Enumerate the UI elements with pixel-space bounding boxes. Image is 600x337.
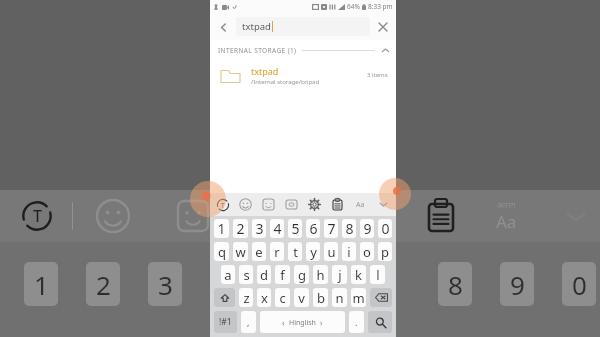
button[interactable]: 3 xyxy=(252,219,266,238)
staticText: r xyxy=(274,243,280,261)
button[interactable]: r xyxy=(270,242,284,261)
button[interactable]: Shift xyxy=(214,288,235,307)
staticText: › xyxy=(320,317,323,328)
staticText: b xyxy=(317,289,325,307)
staticText: a xyxy=(224,266,232,284)
button[interactable]: 4 xyxy=(270,219,284,238)
staticText: w xyxy=(235,243,246,261)
button[interactable]: b xyxy=(313,288,328,307)
button[interactable]: f xyxy=(275,265,290,284)
staticText: . xyxy=(355,316,358,328)
button[interactable]: i xyxy=(342,242,356,261)
button[interactable]: p xyxy=(378,242,392,261)
button[interactable]: a xyxy=(221,265,235,284)
staticText: 3 items xyxy=(367,71,388,79)
button[interactable]: !#1 xyxy=(214,311,237,333)
staticText: t xyxy=(293,243,298,261)
button[interactable]: x xyxy=(257,288,271,307)
button[interactable]: 2 xyxy=(233,219,248,238)
button[interactable]: Search xyxy=(368,311,392,333)
staticText: 4 xyxy=(273,219,282,238)
staticText: g xyxy=(298,266,306,284)
staticText: 3 xyxy=(255,219,264,238)
staticText: !#1 xyxy=(219,316,232,328)
button[interactable]: w xyxy=(233,242,248,261)
staticText: k xyxy=(355,266,362,284)
staticText: 0 xyxy=(381,219,390,238)
button[interactable]: 9 xyxy=(360,219,374,238)
button[interactable]: Emoji xyxy=(235,194,256,215)
staticText: i xyxy=(347,243,351,261)
staticText: 9 xyxy=(510,267,525,302)
button[interactable]: 1 xyxy=(214,219,229,238)
staticText: ‹ xyxy=(282,317,285,328)
button[interactable]: n xyxy=(332,288,347,307)
staticText: d xyxy=(260,266,268,284)
staticText: 6 xyxy=(309,219,318,238)
button[interactable]: s xyxy=(239,265,253,284)
staticText: 5 xyxy=(291,219,300,238)
button[interactable]: o xyxy=(360,242,374,261)
button[interactable]: e xyxy=(252,242,266,261)
button[interactable]: u xyxy=(324,242,338,261)
staticText: Aa xyxy=(356,200,365,210)
staticText: T xyxy=(33,205,42,227)
button[interactable]: l xyxy=(370,265,385,284)
staticText: h xyxy=(316,266,325,284)
button[interactable]: 5 xyxy=(288,219,302,238)
staticText: 64% xyxy=(347,2,360,11)
staticText: f xyxy=(280,266,285,284)
button[interactable]: g xyxy=(294,265,309,284)
button[interactable]: 0 xyxy=(378,219,392,238)
button[interactable]: 6 xyxy=(306,219,320,238)
staticText: m xyxy=(352,289,365,307)
button[interactable]: Text mode xyxy=(350,194,371,215)
staticText: Hinglish xyxy=(289,318,316,328)
staticText: 1 xyxy=(217,219,226,238)
staticText: o xyxy=(363,243,371,261)
button[interactable]: txtpad xyxy=(210,60,396,90)
button[interactable]: GIF xyxy=(281,194,302,215)
staticText: l xyxy=(376,266,380,284)
button[interactable]: Stickers xyxy=(258,194,279,215)
button[interactable]: , xyxy=(241,311,256,333)
button[interactable]: ‹ xyxy=(260,311,345,333)
button[interactable]: y xyxy=(306,242,320,261)
button[interactable]: t xyxy=(288,242,302,261)
button[interactable]: z xyxy=(239,288,253,307)
button[interactable]: d xyxy=(257,265,271,284)
staticText: INTERNAL STORAGE (1) xyxy=(218,46,297,55)
staticText: 0 xyxy=(572,267,587,302)
button[interactable]: Translate xyxy=(212,194,233,215)
staticText: j xyxy=(338,266,342,284)
button[interactable]: Settings xyxy=(304,194,325,215)
button[interactable]: More xyxy=(373,194,394,215)
staticText: x xyxy=(261,289,268,307)
button[interactable]: j xyxy=(332,265,347,284)
staticText: txtpad xyxy=(242,20,271,33)
button[interactable]: h xyxy=(313,265,328,284)
button[interactable]: v xyxy=(294,288,309,307)
staticText: 8:33 pm xyxy=(368,2,393,11)
button[interactable]: 7 xyxy=(324,219,338,238)
button[interactable]: txtpad xyxy=(236,17,370,36)
staticText: 7 xyxy=(327,219,336,238)
staticText: s xyxy=(243,266,250,284)
staticText: 2 xyxy=(236,219,245,238)
button[interactable]: Clear search xyxy=(370,14,396,40)
button[interactable]: . xyxy=(349,311,364,333)
staticText: 2 xyxy=(96,267,111,302)
staticText: n xyxy=(335,289,344,307)
button[interactable]: k xyxy=(351,265,366,284)
staticText: c xyxy=(279,289,286,307)
button[interactable]: 8 xyxy=(342,219,356,238)
button[interactable]: Backspace xyxy=(370,288,392,307)
staticText: Aa xyxy=(496,210,517,233)
button[interactable]: m xyxy=(351,288,366,307)
button[interactable]: Clipboard xyxy=(327,194,348,215)
staticText: y xyxy=(310,243,317,261)
button[interactable]: Back xyxy=(210,14,236,40)
button[interactable]: q xyxy=(214,242,229,261)
button[interactable]: INTERNAL STORAGE (1) xyxy=(210,40,396,60)
button[interactable]: c xyxy=(275,288,290,307)
